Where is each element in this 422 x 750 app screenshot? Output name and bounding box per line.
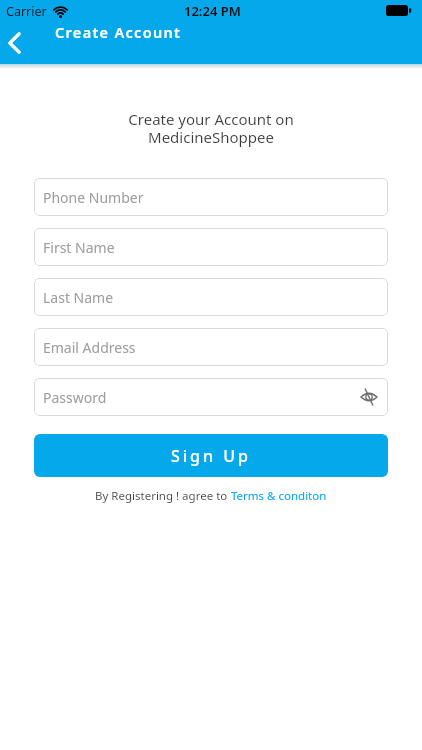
staticText: Carrier bbox=[6, 3, 47, 20]
button[interactable]: Sign Up bbox=[34, 434, 388, 477]
staticText: Password bbox=[43, 388, 107, 407]
staticText: Create Account bbox=[55, 22, 182, 42]
staticText: By Registering ! agree to bbox=[95, 488, 231, 504]
staticText: Last Name bbox=[43, 288, 114, 307]
staticText: Email Address bbox=[43, 338, 136, 357]
button[interactable]: Phone Number bbox=[34, 178, 388, 216]
staticText: 12:24 PM bbox=[184, 2, 241, 20]
button[interactable]: Password bbox=[34, 378, 388, 416]
button[interactable]: Terms & conditon bbox=[231, 488, 327, 504]
button[interactable]: Last Name bbox=[34, 278, 388, 316]
button[interactable]: Email Address bbox=[34, 328, 388, 366]
staticText: Phone Number bbox=[43, 188, 144, 207]
button[interactable]: First Name bbox=[34, 228, 388, 266]
staticText: Sign Up bbox=[171, 445, 251, 467]
staticText: First Name bbox=[43, 238, 115, 257]
staticText: Create your Account on MedicineShoppee bbox=[0, 109, 422, 147]
button[interactable] bbox=[8, 32, 21, 54]
